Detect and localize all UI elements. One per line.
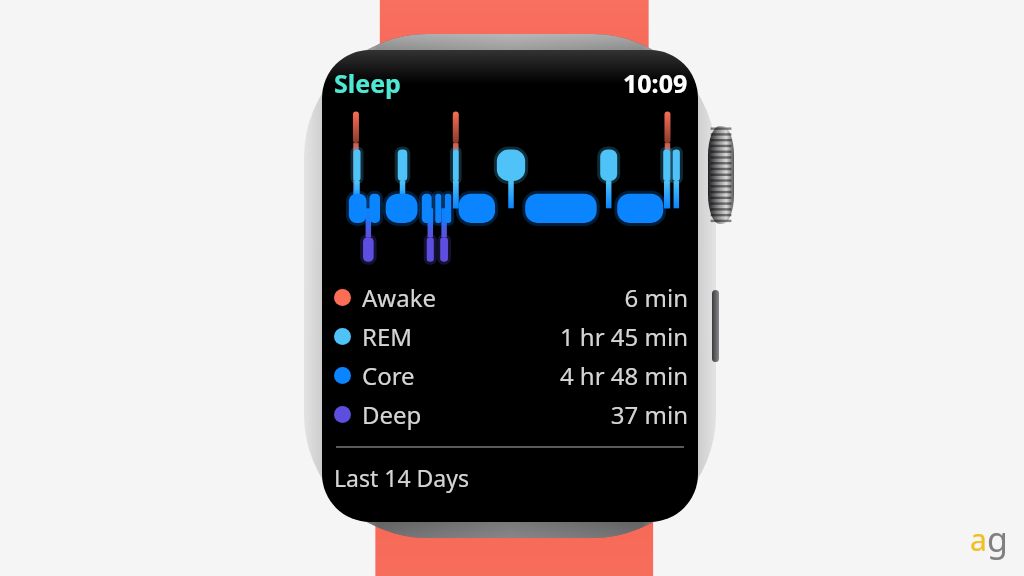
staticText: 1 hr 45 min: [559, 320, 688, 353]
staticText: 6 min: [624, 281, 688, 314]
button[interactable]: Deep: [334, 395, 688, 434]
button[interactable]: Last 14 Days: [334, 462, 688, 493]
button[interactable]: Sleep stages chart: [334, 106, 688, 264]
staticText: 10:09: [623, 66, 688, 100]
staticText: 4 hr 48 min: [559, 359, 688, 392]
staticText: REM: [362, 320, 413, 353]
staticText: 37 min: [610, 398, 688, 431]
button[interactable]: REM: [334, 317, 688, 356]
staticText: g: [987, 516, 1008, 562]
button[interactable]: Awake: [334, 278, 688, 317]
staticText: a: [970, 519, 987, 560]
staticText: Sleep: [334, 66, 401, 100]
staticText: Deep: [362, 398, 422, 431]
staticText: Last 14 Days: [334, 462, 469, 493]
button[interactable]: Digital Crown: [708, 126, 734, 224]
staticText: Awake: [362, 281, 437, 314]
button[interactable]: Core: [334, 356, 688, 395]
button[interactable]: Side Button: [712, 290, 719, 362]
staticText: Core: [362, 359, 415, 392]
